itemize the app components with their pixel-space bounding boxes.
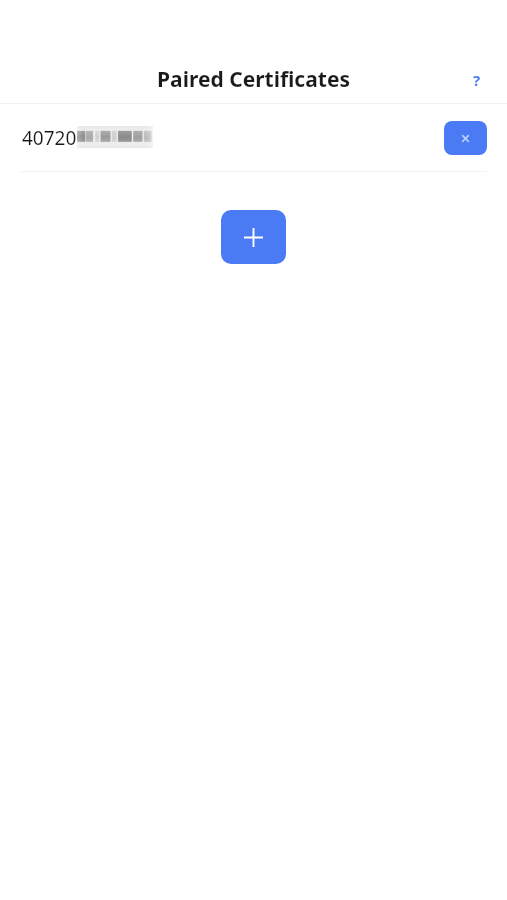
button[interactable]: Add certificate — [221, 210, 286, 264]
staticText: ? — [473, 70, 481, 90]
staticText: Paired Certificates — [0, 65, 507, 94]
staticText: 40720 — [22, 125, 77, 151]
button[interactable]: Remove certificate — [444, 121, 487, 155]
button[interactable]: 40720 — [0, 104, 507, 171]
button[interactable]: Help — [457, 60, 497, 100]
